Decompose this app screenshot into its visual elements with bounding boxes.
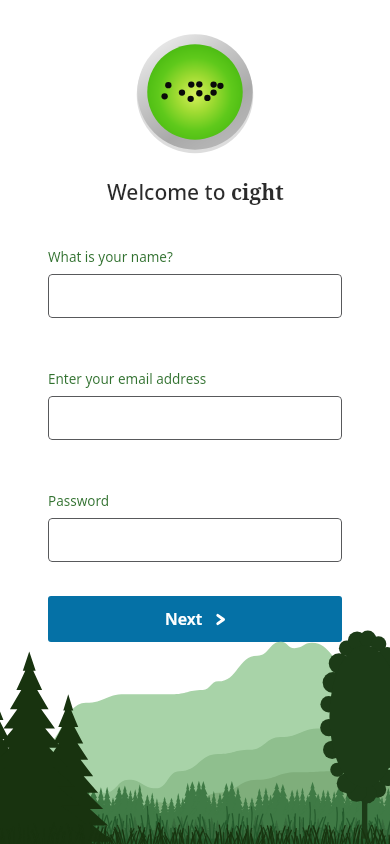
staticText: What is your name? — [48, 248, 173, 266]
button[interactable]: Next — [48, 596, 342, 642]
staticText: Welcome to cight — [107, 178, 284, 207]
staticText: Next — [165, 608, 203, 630]
button[interactable] — [48, 518, 342, 562]
button[interactable] — [48, 396, 342, 440]
staticText: Enter your email address — [48, 370, 207, 388]
button[interactable] — [48, 274, 342, 318]
staticText: Password — [48, 492, 110, 510]
